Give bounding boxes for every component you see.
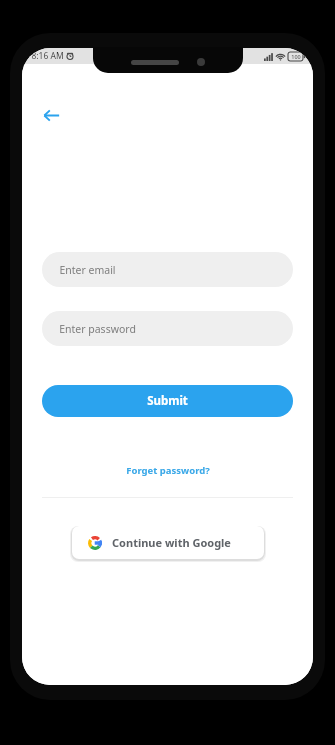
staticText: Continue with Google — [112, 535, 231, 550]
button[interactable]: Enter password — [42, 311, 293, 346]
button[interactable]: Continue with Google — [72, 526, 264, 559]
staticText: 8:16 AM — [31, 50, 64, 62]
button[interactable]: Back — [34, 98, 68, 132]
staticText: Submit — [147, 393, 188, 409]
staticText: 100 — [291, 53, 301, 60]
staticText: Enter password — [59, 322, 136, 336]
button[interactable]: Forget password? — [120, 461, 216, 480]
button[interactable]: Submit — [42, 385, 293, 417]
staticText: Enter email — [59, 263, 116, 277]
staticText: Forget password? — [126, 464, 210, 477]
button[interactable]: Enter email — [42, 252, 293, 287]
